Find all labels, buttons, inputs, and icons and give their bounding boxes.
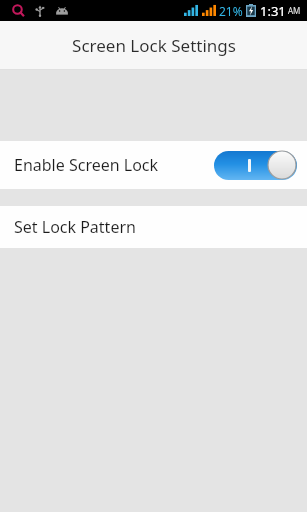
staticText: Enable Screen Lock: [14, 154, 159, 176]
staticText: Set Lock Pattern: [14, 216, 136, 238]
staticText: Screen Lock Settings: [72, 34, 236, 57]
staticText: 21%: [219, 3, 243, 19]
button[interactable]: Enable Screen Lock: [0, 141, 307, 189]
staticText: AM: [288, 5, 301, 16]
button[interactable]: Set Lock Pattern: [0, 206, 307, 248]
button[interactable]: Enable Screen Lock toggle, on: [214, 150, 297, 180]
staticText: 1:31: [260, 2, 286, 20]
